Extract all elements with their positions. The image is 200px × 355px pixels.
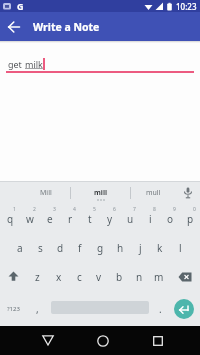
button[interactable]: r (60, 204, 80, 233)
button[interactable]: t (80, 204, 100, 233)
staticText: f (78, 241, 82, 255)
staticText: 0 (193, 206, 196, 213)
staticText: ?123 (7, 305, 20, 313)
staticText: r (68, 212, 73, 226)
staticText: k (157, 241, 163, 255)
staticText: 1 (13, 206, 16, 213)
button[interactable]: b (109, 262, 129, 291)
button[interactable]: Mill (22, 182, 70, 204)
staticText: Write a Note (33, 20, 100, 34)
button[interactable]: f (70, 233, 90, 262)
staticText: e (47, 212, 53, 226)
button[interactable]: v (89, 262, 109, 291)
button[interactable]: mull (131, 182, 175, 204)
staticText: v (96, 270, 102, 284)
button[interactable]: mill (71, 182, 130, 204)
staticText: t (88, 212, 92, 226)
button[interactable]: e (40, 204, 60, 233)
staticText: x (56, 270, 62, 284)
button[interactable]: s (30, 233, 50, 262)
staticText: u (127, 212, 134, 226)
button[interactable] (168, 291, 200, 326)
button[interactable] (75, 326, 130, 355)
button[interactable]: d (50, 233, 70, 262)
staticText: 10:23 (176, 1, 197, 12)
staticText: j (139, 241, 142, 255)
button[interactable]: g (90, 233, 110, 262)
staticText: b (116, 270, 123, 284)
staticText: l (179, 241, 182, 255)
button[interactable]: k (150, 233, 170, 262)
staticText: h (117, 241, 124, 255)
staticText: 3 (53, 206, 56, 213)
button[interactable]: p (180, 204, 200, 233)
staticText: . (159, 302, 162, 316)
button[interactable] (175, 182, 200, 204)
button[interactable]: y (100, 204, 120, 233)
button[interactable] (48, 291, 152, 326)
staticText: y (107, 212, 113, 226)
staticText: 9 (173, 206, 176, 213)
button[interactable]: q (0, 204, 20, 233)
staticText: s (38, 241, 43, 255)
staticText: d (57, 241, 64, 255)
staticText: milk (25, 58, 43, 70)
staticText: q (7, 212, 14, 226)
button[interactable]: a (10, 233, 30, 262)
staticText: n (136, 270, 143, 284)
button[interactable]: ?123 (0, 291, 26, 326)
staticText: get (8, 58, 25, 70)
button[interactable]: m (149, 262, 169, 291)
staticText: w (26, 212, 34, 226)
staticText: mill (94, 188, 108, 198)
button[interactable]: u (120, 204, 140, 233)
staticText: 8 (153, 206, 156, 213)
button[interactable]: x (48, 262, 69, 291)
button[interactable] (0, 262, 27, 291)
staticText: g (97, 241, 104, 255)
button[interactable]: h (110, 233, 130, 262)
button[interactable]: , (26, 291, 48, 326)
staticText: i (149, 212, 152, 226)
staticText: p (187, 212, 194, 226)
staticText: 7 (133, 206, 136, 213)
button[interactable]: j (130, 233, 150, 262)
button[interactable]: l (170, 233, 190, 262)
button[interactable]: c (69, 262, 89, 291)
staticText: o (167, 212, 174, 226)
button[interactable] (20, 326, 75, 355)
button[interactable]: z (27, 262, 48, 291)
button[interactable]: . (152, 291, 168, 326)
staticText: c (77, 270, 82, 284)
button[interactable]: o (160, 204, 180, 233)
button[interactable] (0, 13, 28, 41)
staticText: Mill (40, 188, 52, 198)
button[interactable]: w (20, 204, 40, 233)
staticText: z (35, 270, 40, 284)
staticText: 4 (73, 206, 76, 213)
button[interactable]: n (129, 262, 149, 291)
staticText: m (154, 270, 164, 284)
staticText: a (17, 241, 23, 255)
staticText: , (36, 302, 39, 316)
button[interactable]: i (140, 204, 160, 233)
staticText: mull (146, 188, 161, 198)
staticText: 2 (33, 206, 36, 213)
button[interactable] (169, 262, 200, 291)
button[interactable] (130, 326, 185, 355)
staticText: G (17, 0, 24, 12)
staticText: 5 (93, 206, 96, 213)
button[interactable]: get (8, 57, 45, 70)
staticText: 6 (113, 206, 116, 213)
